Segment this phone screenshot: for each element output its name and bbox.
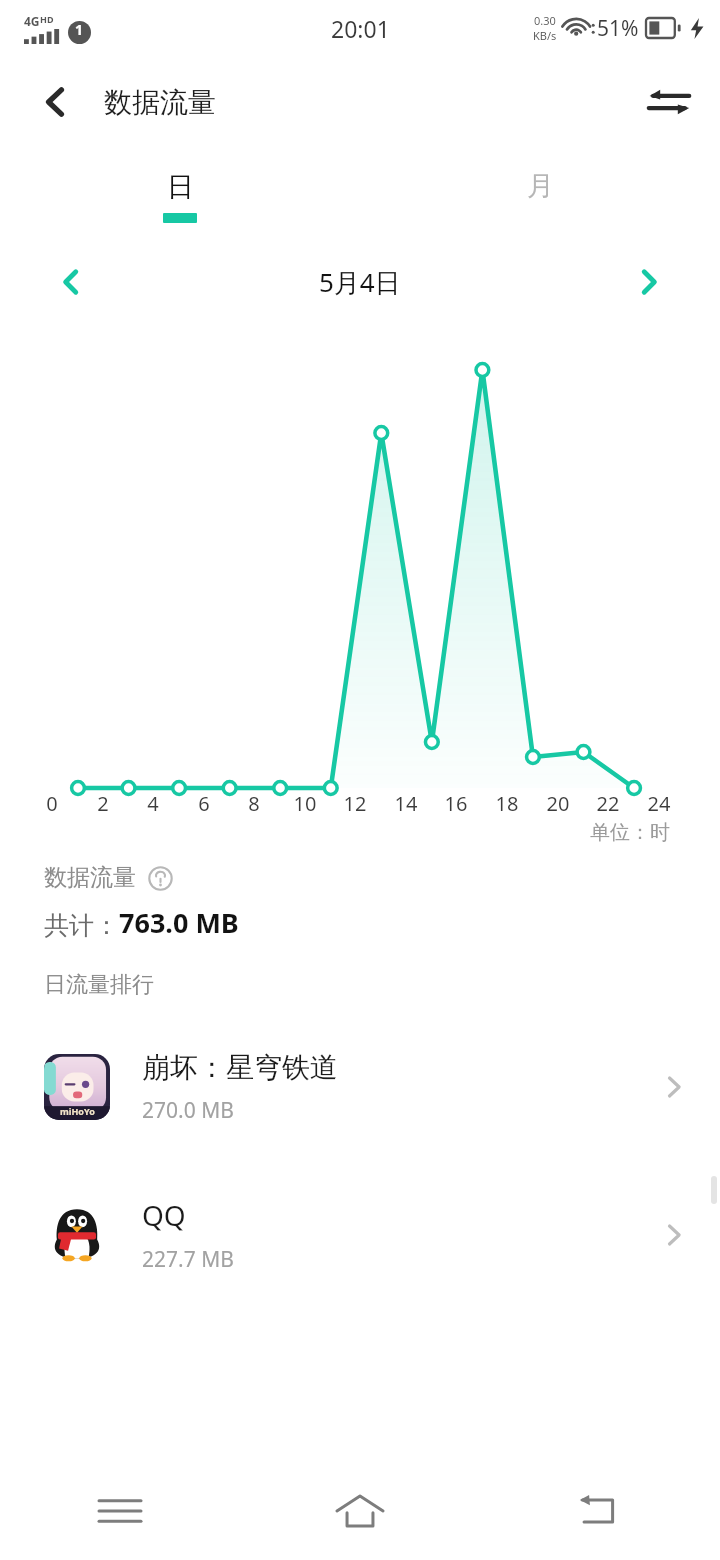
button[interactable]: Switch view [638, 71, 700, 133]
button[interactable]: Back [26, 73, 84, 131]
button[interactable]: Home [240, 1462, 480, 1560]
button[interactable]: Previous day [42, 253, 100, 311]
staticText: 18 [487, 790, 527, 817]
staticText: 单位：时 [590, 820, 670, 845]
staticText: 16 [436, 790, 476, 817]
staticText: 0.30 [534, 13, 556, 28]
staticText: 12 [335, 790, 375, 817]
staticText: 日流量排行 [44, 971, 154, 999]
staticText: 数据流量 [44, 863, 136, 892]
staticText: 6 [184, 790, 224, 817]
staticText: 51% [597, 14, 639, 43]
staticText: QQ [142, 1196, 186, 1234]
staticText: 崩坏：星穹铁道 [142, 1050, 338, 1085]
staticText: KB/s [533, 28, 557, 43]
staticText: 24 [639, 790, 679, 817]
button[interactable]: Recent apps [0, 1462, 240, 1560]
button[interactable]: 日 [0, 148, 360, 244]
staticText: 0 [32, 790, 72, 817]
button[interactable]: 月 [360, 148, 720, 244]
staticText: 5月4日 [319, 264, 401, 300]
staticText: 20 [538, 790, 578, 817]
staticText: 14 [386, 790, 426, 817]
staticText: 日 [167, 170, 194, 204]
staticText: miHoYo [60, 1105, 95, 1117]
staticText: 4G [24, 13, 40, 29]
staticText: 4 [133, 790, 173, 817]
staticText: 10 [285, 790, 325, 817]
staticText: 270.0 MB [142, 1096, 234, 1125]
staticText: 8 [234, 790, 274, 817]
staticText: 共计： [44, 910, 119, 941]
staticText: HD [40, 13, 54, 25]
button[interactable]: Next day [620, 253, 678, 311]
staticText: 2 [83, 790, 123, 817]
button[interactable]: miHoYo [0, 1013, 720, 1161]
staticText: 227.7 MB [142, 1245, 234, 1274]
button[interactable]: Help [146, 864, 174, 892]
button[interactable]: Back [480, 1462, 720, 1560]
button[interactable]: QQ [0, 1161, 720, 1309]
staticText: 数据流量 [104, 85, 216, 120]
staticText: 1 [75, 21, 84, 39]
staticText: 20:01 [331, 13, 390, 44]
staticText: 22 [588, 790, 628, 817]
staticText: 月 [527, 169, 554, 203]
staticText: 763.0 MB [119, 904, 239, 941]
